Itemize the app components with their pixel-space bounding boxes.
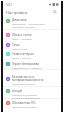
- staticText: Обновление ПО: [12, 101, 36, 105]
- staticText: 9:41: [6, 3, 12, 7]
- staticText: Настройки: [6, 10, 27, 15]
- staticText: Безопасность и конфиденциальность: [12, 75, 62, 82]
- button[interactable]: Безопасность и конфиденциальность: [3, 74, 61, 84]
- staticText: Главный экран: [12, 52, 34, 56]
- staticText: Уведомления — Виджеты: [12, 66, 42, 69]
- staticText: Джастина: [12, 18, 27, 22]
- staticText: Темы: [12, 43, 20, 47]
- staticText: Темы — Шрифты: [12, 37, 32, 40]
- staticText: Экран блокировки: [12, 62, 40, 66]
- staticText: Сервисы и настройки: [12, 93, 38, 96]
- staticText: Обои и стиль: [12, 47, 28, 50]
- button[interactable]: Главный экран: [3, 49, 61, 59]
- staticText: Google: [12, 89, 23, 93]
- staticText: Резервное копирование: [12, 96, 41, 99]
- staticText: Конфиденц. — Безопасность: [12, 22, 46, 25]
- button[interactable]: Обои и стиль: [3, 30, 61, 40]
- button[interactable]: Экран блокировки: [3, 59, 61, 69]
- button[interactable]: Search: [52, 9, 58, 15]
- staticText: Обои и стиль: [12, 33, 32, 37]
- staticText: Настройки аккаунта: [12, 25, 36, 28]
- button[interactable]: Джастина: [3, 16, 61, 26]
- button[interactable]: Обновление ПО: [3, 98, 61, 108]
- staticText: Обновление системы: [12, 105, 37, 108]
- button[interactable]: Темы: [3, 40, 61, 50]
- staticText: Сетка — Значки: [12, 56, 31, 59]
- button[interactable]: Google: [3, 86, 61, 96]
- staticText: Блокировка экрана: [12, 82, 35, 85]
